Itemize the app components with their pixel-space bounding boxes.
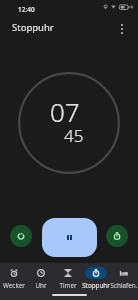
staticText: Schlafen... [110,281,138,290]
staticText: Uhr [35,281,47,290]
staticText: Stoppuhr [82,281,110,290]
staticText: 07 [50,94,80,129]
staticText: 12:40 [18,5,35,14]
button[interactable]: Reset [10,225,32,247]
button[interactable]: Stoppuhr [82,263,110,300]
button[interactable]: Lap [106,225,128,247]
staticText: Timer [59,281,77,290]
staticText: Stoppuhr [12,21,54,34]
button[interactable]: Wecker [0,263,27,300]
staticText: 45 [64,124,84,147]
button[interactable]: Pause [42,218,97,257]
staticText: Wecker [3,281,25,290]
button[interactable]: Schlafen... [110,263,138,300]
button[interactable]: Timer [54,263,82,300]
button[interactable]: Uhr [27,263,54,300]
button[interactable]: More options [114,21,130,37]
